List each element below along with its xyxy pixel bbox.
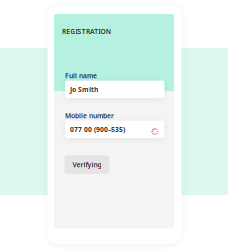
staticText: Mobile number — [65, 111, 114, 120]
staticText: Verifying — [72, 160, 101, 169]
staticText: Jo Smith — [70, 85, 98, 94]
staticText: REGISTRATION — [62, 27, 111, 36]
button[interactable]: Verifying — [64, 155, 109, 174]
staticText: Full name — [65, 71, 97, 80]
staticText: 077 00 (900–535) — [70, 125, 125, 134]
